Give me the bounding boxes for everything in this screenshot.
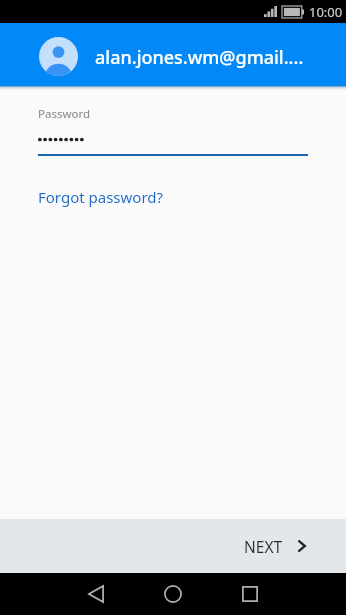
button[interactable]: NEXT [0, 519, 346, 573]
button[interactable]: Back [68, 573, 124, 615]
button[interactable]: Recent apps [222, 573, 278, 615]
staticText: alan.jones.wm@gmail.... [95, 45, 304, 70]
button[interactable]: Forgot password? [0, 185, 176, 211]
staticText: 10:00 [309, 3, 343, 21]
staticText: NEXT [244, 536, 283, 557]
button[interactable]: Home [145, 573, 201, 615]
staticText: Password [38, 106, 91, 122]
staticText: Forgot password? [38, 187, 164, 207]
